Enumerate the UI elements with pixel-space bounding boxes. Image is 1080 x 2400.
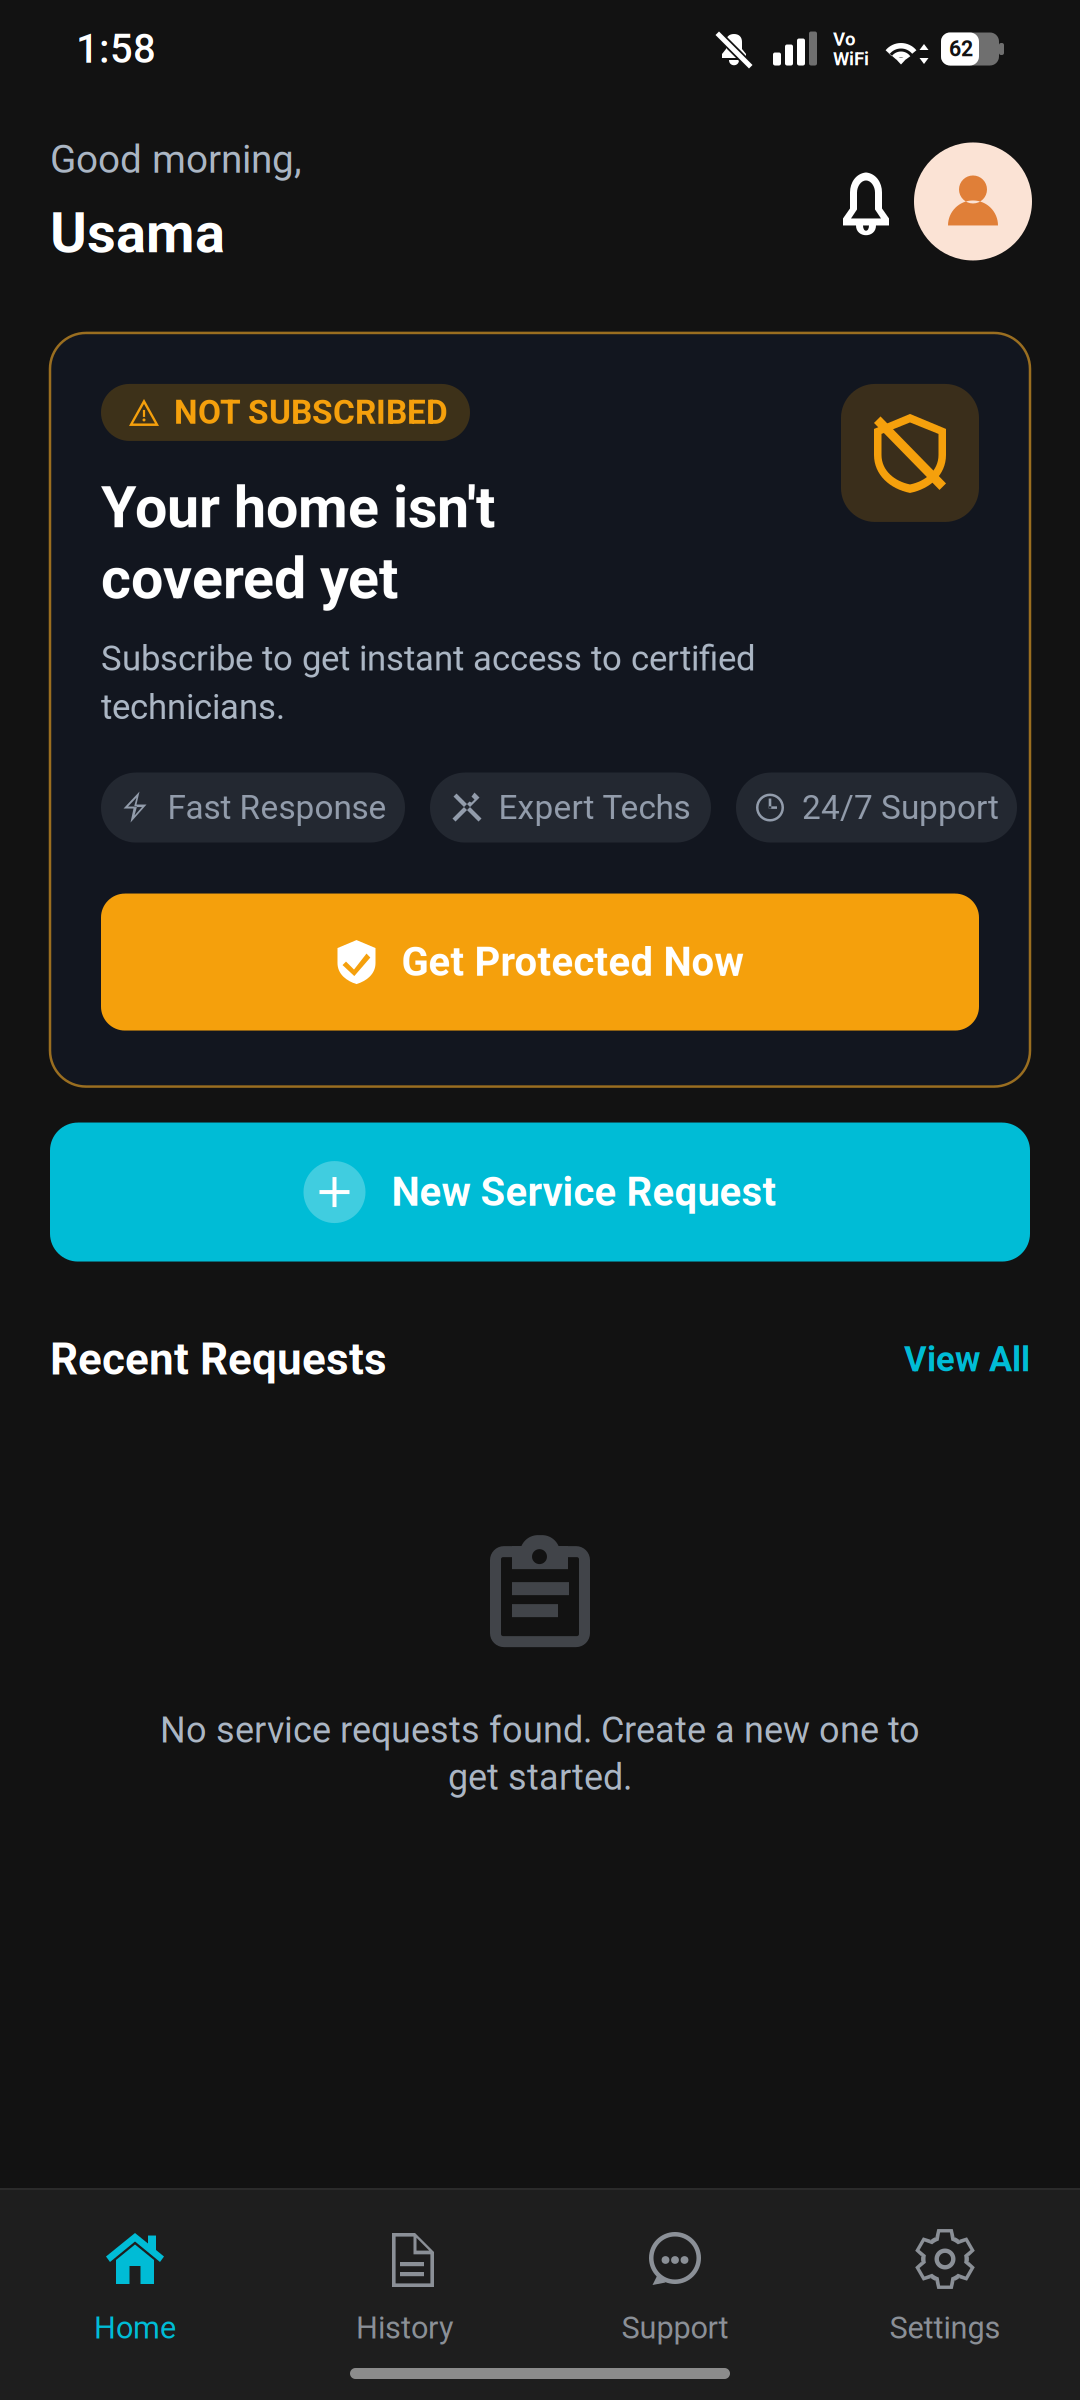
- staticText: 1:58: [76, 26, 156, 72]
- staticText: WiFi: [833, 48, 869, 70]
- staticText: technicians.: [101, 687, 285, 727]
- staticText: Support: [621, 2310, 728, 2346]
- staticText: get started.: [448, 1756, 632, 1798]
- staticText: Get Protected Now: [401, 939, 743, 985]
- button[interactable]: Notifications: [818, 142, 914, 260]
- button[interactable]: New Service Request: [50, 1123, 1030, 1262]
- staticText: Expert Techs: [498, 788, 690, 827]
- staticText: 24/7 Support: [802, 788, 999, 827]
- button[interactable]: View All: [904, 1339, 1030, 1380]
- staticText: Good morning,: [50, 137, 302, 182]
- staticText: History: [356, 2310, 454, 2346]
- staticText: Recent Requests: [50, 1334, 387, 1385]
- staticText: Home: [94, 2310, 176, 2346]
- staticText: covered yet: [101, 545, 398, 612]
- staticText: No service requests found. Create a new …: [160, 1709, 920, 1751]
- staticText: Usama: [50, 200, 225, 266]
- staticText: Subscribe to get instant access to certi…: [101, 638, 756, 679]
- staticText: New Service Request: [391, 1169, 776, 1215]
- button[interactable]: History: [270, 2190, 540, 2348]
- staticText: 62: [949, 36, 973, 61]
- staticText: Fast Response: [167, 788, 386, 827]
- staticText: Settings: [889, 2310, 1000, 2346]
- button[interactable]: Support: [540, 2190, 810, 2348]
- staticText: Vo: [833, 28, 856, 50]
- staticText: View All: [904, 1339, 1030, 1380]
- button[interactable]: Profile: [914, 142, 1032, 260]
- staticText: Your home isn't: [101, 474, 495, 541]
- button[interactable]: Get Protected Now: [101, 894, 979, 1031]
- button[interactable]: Home: [0, 2190, 270, 2348]
- staticText: NOT SUBSCRIBED: [174, 393, 448, 432]
- button[interactable]: Settings: [810, 2190, 1080, 2348]
